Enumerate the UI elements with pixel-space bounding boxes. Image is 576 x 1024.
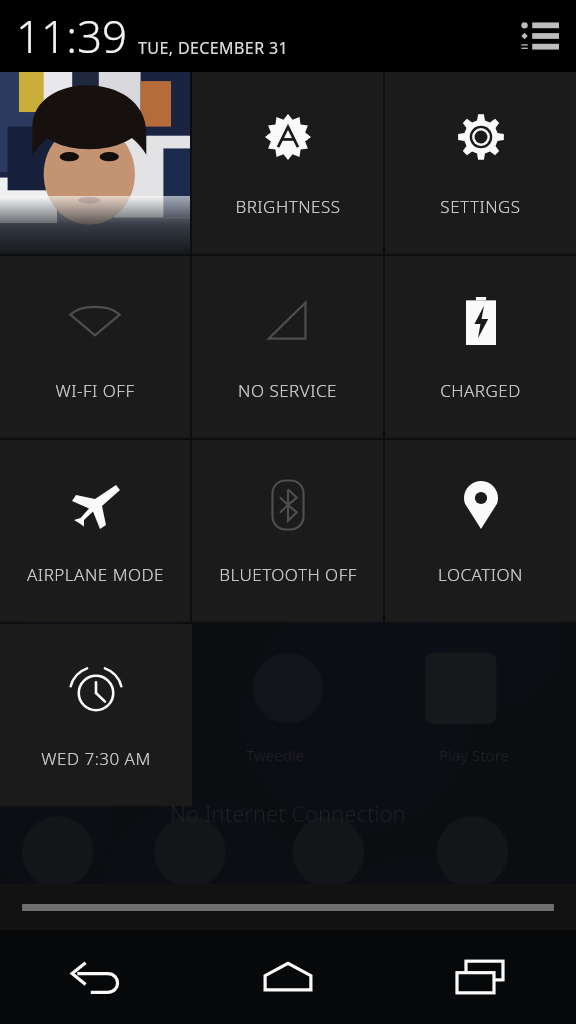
staticText: TUE, DECEMBER 31 [138,37,289,59]
staticText: BLUETOOTH OFF [219,563,357,586]
button[interactable]: Recent apps [384,930,576,1024]
staticText: BRIGHTNESS [235,195,341,218]
button[interactable]: Home [192,930,384,1024]
button[interactable]: CHARGED [385,256,576,438]
button[interactable]: WI-FI OFF [0,256,190,438]
staticText: AIRPLANE MODE [27,563,164,586]
staticText: Weibo [67,745,112,765]
button[interactable]: Back [0,930,192,1024]
button[interactable]: Notifications [516,13,562,59]
staticText: WI-FI OFF [55,379,135,402]
button[interactable]: LOCATION [385,440,576,622]
button[interactable]: BLUETOOTH OFF [192,440,383,622]
staticText: LOCATION [438,563,523,586]
button[interactable]: WED 7:30 AM [0,624,192,806]
staticText: Tweedle [246,745,305,765]
button[interactable]: SETTINGS [385,72,576,254]
staticText: NO SERVICE [238,379,337,402]
button[interactable]: User profile [0,72,190,254]
button[interactable]: BRIGHTNESS [192,72,383,254]
button[interactable]: AIRPLANE MODE [0,440,190,622]
staticText: 11:39 [16,6,128,66]
staticText: Play Store [439,745,509,765]
button[interactable]: NO SERVICE [192,256,383,438]
staticText: WED 7:30 AM [41,747,151,770]
button[interactable]: Collapse quick settings [0,884,576,930]
staticText: SETTINGS [440,195,521,218]
staticText: No Internet Connection [170,798,406,828]
staticText: CHARGED [440,379,521,402]
